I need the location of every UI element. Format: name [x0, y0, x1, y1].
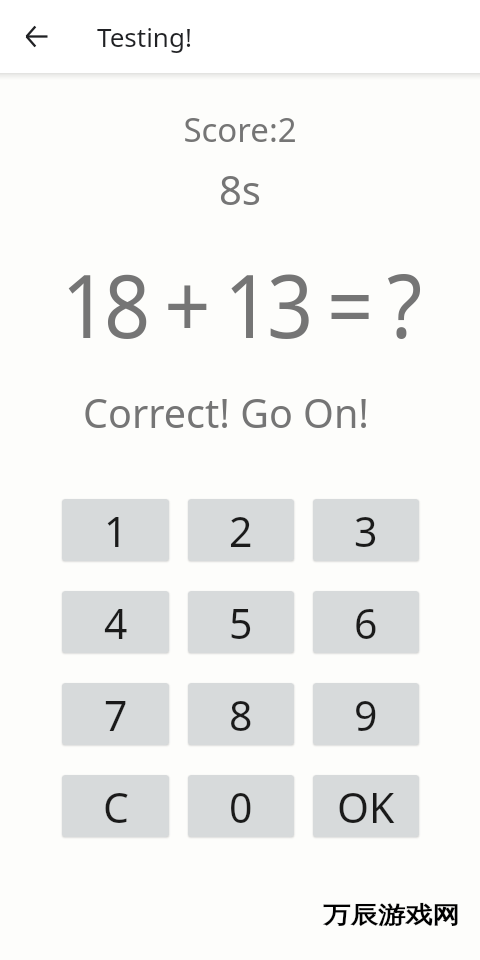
button[interactable]: 7	[62, 683, 169, 745]
button[interactable]: 0	[188, 775, 294, 837]
staticText: OK	[337, 779, 395, 835]
staticText: 4	[104, 595, 128, 651]
button[interactable]: 2	[188, 499, 294, 561]
button[interactable]: OK	[313, 775, 419, 837]
staticText: 7	[104, 687, 128, 743]
button[interactable]: 5	[188, 591, 294, 653]
staticText: 6	[354, 595, 378, 651]
staticText: Score:2	[0, 107, 480, 152]
staticText: Testing!	[97, 19, 192, 54]
staticText: 3	[354, 503, 378, 559]
staticText: 2	[229, 503, 253, 559]
staticText: 8	[229, 687, 253, 743]
staticText: 9	[354, 687, 378, 743]
staticText: 1	[104, 503, 128, 559]
button[interactable]: 3	[313, 499, 419, 561]
staticText: Correct! Go On!	[0, 386, 466, 440]
button[interactable]: C	[62, 775, 169, 837]
staticText: 5	[229, 595, 253, 651]
button[interactable]: 1	[62, 499, 169, 561]
button[interactable]: 6	[313, 591, 419, 653]
staticText: 0	[229, 779, 253, 835]
button[interactable]: 4	[62, 591, 169, 653]
button[interactable]: Back	[12, 12, 60, 60]
staticText: C	[103, 779, 129, 835]
staticText: 18 + 13 = ?	[19, 244, 461, 364]
staticText: 8s	[0, 162, 480, 216]
button[interactable]: 9	[313, 683, 419, 745]
staticText: 万辰游戏网	[323, 901, 460, 930]
button[interactable]: 8	[188, 683, 294, 745]
